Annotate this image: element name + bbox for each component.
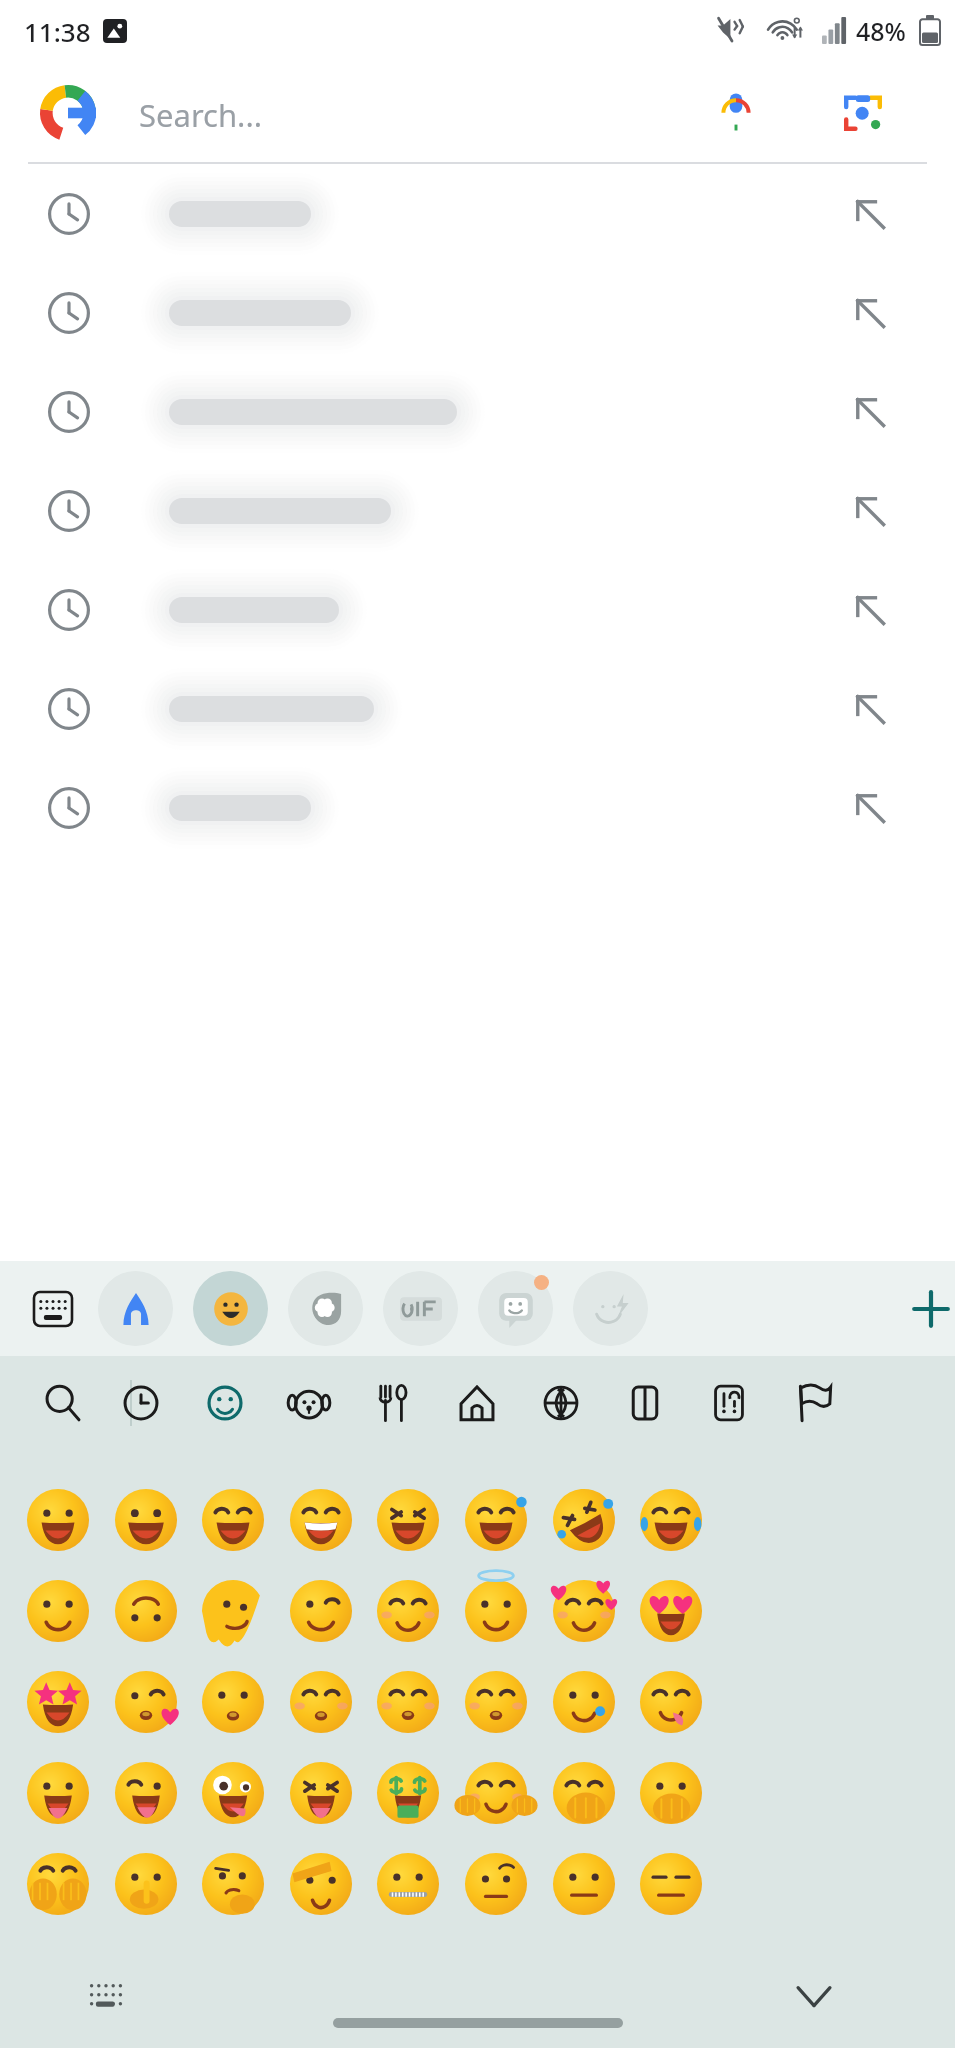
button[interactable]: Emoji bbox=[544, 1844, 624, 1924]
button[interactable] bbox=[478, 1271, 553, 1346]
button[interactable]: Emoji bbox=[368, 1662, 448, 1742]
button[interactable]: Emoji bbox=[106, 1844, 186, 1924]
button[interactable]: Recent search bbox=[0, 758, 955, 857]
button[interactable]: Recent search bbox=[0, 461, 955, 560]
other: Recent search bbox=[48, 490, 90, 532]
button[interactable]: Emoji bbox=[106, 1753, 186, 1833]
button[interactable]: Insert suggestion bbox=[840, 580, 900, 640]
button[interactable]: Voice search bbox=[707, 83, 765, 141]
button[interactable]: Recent bbox=[110, 1372, 172, 1434]
button[interactable]: Emoji bbox=[456, 1480, 536, 1560]
button[interactable] bbox=[98, 1271, 173, 1346]
button[interactable]: Emoji bbox=[456, 1571, 536, 1651]
button[interactable]: Emoji bbox=[631, 1571, 711, 1651]
button[interactable]: Search emoji bbox=[32, 1372, 94, 1434]
button[interactable]: Emoji bbox=[106, 1662, 186, 1742]
button[interactable] bbox=[573, 1271, 648, 1346]
button[interactable]: Insert suggestion bbox=[840, 679, 900, 739]
button[interactable]: Flags bbox=[782, 1372, 844, 1434]
button[interactable]: Emoji bbox=[106, 1571, 186, 1651]
button[interactable]: Emoji bbox=[456, 1753, 536, 1833]
button[interactable]: Emoji bbox=[631, 1480, 711, 1560]
button[interactable]: Search... bbox=[0, 62, 955, 162]
button[interactable]: Emoji bbox=[193, 1753, 273, 1833]
button[interactable]: Emoji bbox=[18, 1571, 98, 1651]
button[interactable]: Recent search bbox=[0, 263, 955, 362]
other: Recent search bbox=[48, 292, 90, 334]
button[interactable]: Symbols bbox=[698, 1372, 760, 1434]
button[interactable]: Insert suggestion bbox=[840, 778, 900, 838]
button[interactable]: Emoji bbox=[18, 1662, 98, 1742]
button[interactable]: Emoji bbox=[368, 1753, 448, 1833]
button[interactable]: Emoji bbox=[281, 1662, 361, 1742]
button[interactable]: Switch to keyboard bbox=[74, 1964, 138, 2028]
button[interactable]: Emoji bbox=[544, 1480, 624, 1560]
button[interactable]: Emoji bbox=[544, 1662, 624, 1742]
other: Recent search bbox=[48, 391, 90, 433]
button[interactable]: Emoji bbox=[631, 1662, 711, 1742]
button[interactable]: Insert suggestion bbox=[840, 481, 900, 541]
button[interactable]: Recent search bbox=[0, 659, 955, 758]
button[interactable]: More options bbox=[900, 1278, 955, 1340]
button[interactable]: Recent search bbox=[0, 560, 955, 659]
button[interactable]: Insert suggestion bbox=[840, 382, 900, 442]
other: Recent search bbox=[48, 193, 90, 235]
button[interactable] bbox=[288, 1271, 363, 1346]
button[interactable]: Emoji bbox=[631, 1844, 711, 1924]
button[interactable]: Emoji bbox=[456, 1662, 536, 1742]
button[interactable]: Keyboard bbox=[22, 1278, 84, 1340]
button[interactable]: Recent search bbox=[0, 362, 955, 461]
button[interactable] bbox=[383, 1271, 458, 1346]
button[interactable]: Insert suggestion bbox=[840, 184, 900, 244]
button[interactable]: Insert suggestion bbox=[840, 283, 900, 343]
button[interactable]: Emoji bbox=[281, 1844, 361, 1924]
button[interactable]: Recent search bbox=[0, 164, 955, 263]
staticText: Search... bbox=[139, 94, 263, 136]
button[interactable]: Emoji bbox=[193, 1571, 273, 1651]
other: Recent search bbox=[48, 688, 90, 730]
button[interactable]: Emoji bbox=[368, 1480, 448, 1560]
button[interactable]: Emoji bbox=[281, 1571, 361, 1651]
button[interactable]: Emoji bbox=[281, 1480, 361, 1560]
button[interactable]: Google Lens bbox=[834, 83, 892, 141]
button[interactable]: Emoji bbox=[193, 1480, 273, 1560]
button[interactable]: Emoji bbox=[544, 1753, 624, 1833]
button[interactable]: Emoji bbox=[368, 1844, 448, 1924]
button[interactable]: Emoji bbox=[18, 1844, 98, 1924]
button[interactable]: Emoji bbox=[544, 1571, 624, 1651]
button[interactable]: Emoji bbox=[18, 1480, 98, 1560]
button[interactable]: Hide keyboard bbox=[780, 1962, 848, 2030]
button[interactable] bbox=[193, 1271, 268, 1346]
button[interactable]: Emoji bbox=[193, 1662, 273, 1742]
button[interactable]: Emoji bbox=[368, 1571, 448, 1651]
staticText: 11:38 bbox=[24, 14, 91, 49]
button[interactable]: Smileys bbox=[194, 1372, 256, 1434]
button[interactable]: Emoji bbox=[456, 1844, 536, 1924]
button[interactable]: Emoji bbox=[193, 1844, 273, 1924]
button[interactable]: Emoji bbox=[631, 1753, 711, 1833]
button[interactable]: Emoji bbox=[281, 1753, 361, 1833]
button[interactable]: Emoji bbox=[106, 1480, 186, 1560]
other: Recent search bbox=[48, 589, 90, 631]
button[interactable]: Animals bbox=[278, 1372, 340, 1434]
button[interactable]: Activities bbox=[530, 1372, 592, 1434]
button[interactable]: Objects bbox=[614, 1372, 676, 1434]
other: Recent search bbox=[48, 787, 90, 829]
button[interactable]: Travel bbox=[446, 1372, 508, 1434]
button[interactable]: Emoji bbox=[18, 1753, 98, 1833]
button[interactable]: Food bbox=[362, 1372, 424, 1434]
staticText: 48% bbox=[856, 14, 906, 48]
